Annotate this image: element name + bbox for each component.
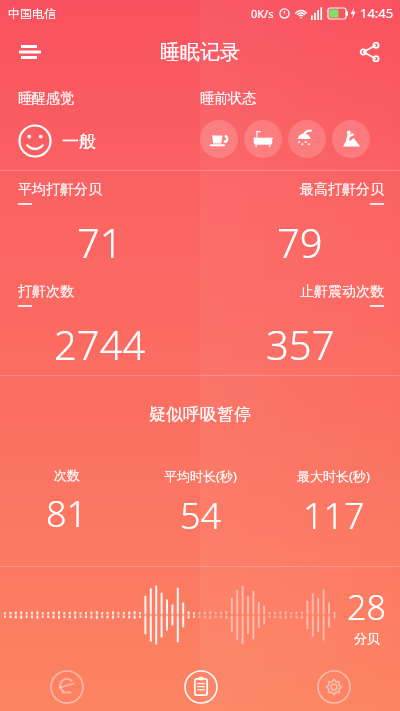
- staticText: 357: [266, 317, 335, 371]
- button[interactable]: 止鼾震动次数: [200, 273, 400, 375]
- staticText: 一般: [62, 131, 96, 152]
- button[interactable]: 最高打鼾分贝: [200, 171, 400, 273]
- staticText: 28: [347, 584, 386, 630]
- button[interactable]: Records: [134, 662, 267, 711]
- button[interactable]: Menu: [8, 30, 52, 74]
- staticText: 0K/s: [251, 6, 274, 21]
- staticText: 14:45: [360, 4, 394, 22]
- staticText: 打鼾次数: [18, 283, 74, 301]
- staticText: 最高打鼾分贝: [300, 181, 384, 199]
- button[interactable]: Settings: [267, 662, 400, 711]
- button[interactable]: Sleep: [0, 662, 134, 711]
- button[interactable]: Bath: [244, 120, 282, 158]
- staticText: 平均打鼾分贝: [18, 181, 102, 199]
- staticText: 平均时长(秒): [164, 467, 237, 485]
- staticText: 分贝: [354, 630, 380, 646]
- staticText: 睡醒感觉: [18, 90, 74, 108]
- button[interactable]: Coffee: [200, 120, 238, 158]
- staticText: 疑似呼吸暂停: [149, 404, 251, 425]
- button[interactable]: Share: [348, 30, 392, 74]
- button[interactable]: 最大时长(秒): [267, 467, 400, 540]
- button[interactable]: 打鼾次数: [0, 273, 200, 375]
- staticText: 54: [180, 491, 222, 540]
- button[interactable]: 平均时长(秒): [134, 467, 267, 540]
- button[interactable]: 次数: [0, 467, 134, 538]
- staticText: 81: [46, 489, 88, 538]
- staticText: 117: [303, 491, 365, 540]
- staticText: 次数: [54, 467, 80, 483]
- button[interactable]: Exercise: [332, 120, 370, 158]
- staticText: 2744: [54, 317, 146, 371]
- button[interactable]: Shower: [288, 120, 326, 158]
- staticText: 79: [277, 215, 323, 269]
- staticText: 71: [77, 215, 123, 269]
- staticText: 最大时长(秒): [297, 467, 370, 485]
- staticText: 中国电信: [8, 6, 56, 21]
- staticText: 止鼾震动次数: [300, 283, 384, 301]
- staticText: 睡眠记录: [160, 40, 240, 65]
- button[interactable]: 平均打鼾分贝: [0, 171, 200, 273]
- staticText: 睡前状态: [200, 90, 256, 108]
